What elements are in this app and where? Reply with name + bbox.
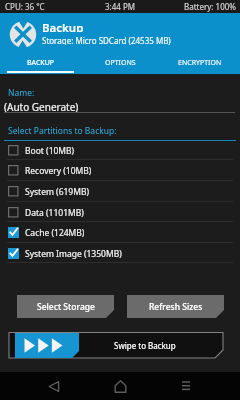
button[interactable] [80,54,160,73]
staticText: System (619MB) [25,186,90,198]
button[interactable] [0,140,240,161]
button[interactable] [0,243,240,264]
button[interactable]: Refresh Sizes [127,295,224,318]
staticText: Select Partitions to Backup: [8,125,117,136]
staticText: System Image (1350MB) [25,248,122,260]
button[interactable] [0,54,80,73]
staticText: Swipe to Backup [114,340,176,351]
staticText: Recovery (10MB) [25,165,92,177]
button[interactable] [0,181,240,202]
staticText: Refresh Sizes [149,301,203,313]
staticText: Battery: 100% [184,1,236,12]
staticText: Storage: Micro SDCard (24535 MB) [42,35,171,45]
staticText: Boot (10MB) [25,145,75,157]
button[interactable] [30,372,78,400]
staticText: BACKUP [27,58,54,68]
staticText: OPTIONS [105,58,136,68]
staticText: ENCRYPTION [178,58,222,68]
button[interactable] [96,372,144,400]
button[interactable] [162,372,210,400]
staticText: Cache (124MB) [25,227,85,239]
staticText: 3:44 PM [105,1,136,12]
button[interactable] [8,332,224,359]
button[interactable] [160,54,240,73]
button[interactable] [0,222,240,243]
staticText: Name: [8,87,35,97]
staticText: (Auto Generate) [4,100,79,112]
staticText: Data (1101MB) [25,207,84,219]
staticText: CPU: 36 °C [5,1,45,12]
button[interactable] [0,160,240,181]
staticText: Backup [42,20,84,32]
button[interactable]: Select Storage [17,295,114,318]
staticText: Select Storage [37,301,95,313]
button[interactable] [0,202,240,223]
